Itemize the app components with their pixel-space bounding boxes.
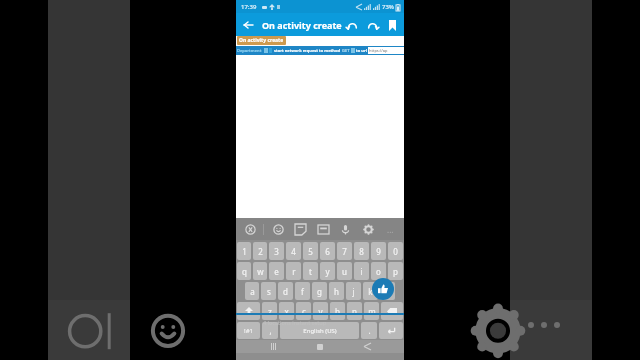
button[interactable]: Like [372, 278, 394, 300]
button[interactable]: d [278, 282, 293, 300]
staticText: ... [387, 224, 394, 235]
staticText: 8 [359, 246, 364, 257]
button[interactable]: q [237, 262, 251, 280]
button[interactable]: u [337, 262, 352, 280]
staticText: y [325, 266, 330, 277]
staticText: 6 [325, 246, 330, 257]
staticText: b [335, 306, 340, 317]
button[interactable]: z [262, 302, 277, 320]
button[interactable]: !#1 [237, 322, 260, 339]
staticText: 0 [393, 246, 398, 257]
button[interactable]: Settings [359, 220, 377, 238]
button[interactable]: 3 [269, 242, 284, 260]
button[interactable]: 1 [237, 242, 251, 260]
staticText: 4 locations instant setup [263, 319, 327, 326]
button[interactable]: j [346, 282, 361, 300]
button[interactable]: w [253, 262, 267, 280]
button[interactable]: m [364, 302, 379, 320]
staticText: 7 [342, 246, 347, 257]
staticText: z [268, 306, 272, 317]
button[interactable]: 7 [337, 242, 352, 260]
staticText: o [376, 266, 381, 277]
staticText: 4 [291, 246, 296, 257]
button[interactable]: a [245, 282, 259, 300]
button[interactable]: 8 [354, 242, 369, 260]
button[interactable]: b [330, 302, 345, 320]
button[interactable]: , [262, 322, 278, 339]
staticText: , [269, 325, 272, 336]
button[interactable]: Back [239, 16, 257, 34]
button[interactable]: 5 [303, 242, 318, 260]
button[interactable]: y [320, 262, 335, 280]
button[interactable]: Home [310, 340, 330, 353]
staticText: j [352, 286, 355, 297]
staticText: . [368, 325, 371, 336]
button[interactable]: 6 [320, 242, 335, 260]
button[interactable]: Clipboard [314, 220, 332, 238]
staticText: f [301, 286, 304, 297]
button[interactable]: Undo [342, 15, 362, 35]
staticText: n [352, 306, 357, 317]
button[interactable]: English (US) [280, 322, 359, 339]
staticText: English (US) [303, 327, 337, 335]
staticText: On activity create [239, 37, 284, 44]
staticText: to url [356, 48, 367, 53]
staticText: start network request to method [274, 48, 340, 53]
staticText: 9 [376, 246, 381, 257]
button[interactable]: h [329, 282, 344, 300]
button[interactable]: e [269, 262, 284, 280]
staticText: m [368, 306, 376, 317]
button[interactable]: v [313, 302, 328, 320]
button[interactable]: n [347, 302, 362, 320]
button[interactable]: Key [379, 322, 403, 339]
button[interactable]: Redo [362, 15, 382, 35]
button[interactable]: Voice typing [241, 220, 259, 238]
button[interactable]: 2 [253, 242, 267, 260]
button[interactable]: i [354, 262, 369, 280]
staticText: t [309, 266, 312, 277]
staticText: e [274, 266, 279, 277]
button[interactable]: p [388, 262, 403, 280]
staticText: On activity create [262, 19, 342, 31]
staticText: k [368, 286, 373, 297]
staticText: x [284, 306, 289, 317]
staticText: u [342, 266, 347, 277]
button[interactable]: c [296, 302, 311, 320]
button[interactable]: f [295, 282, 310, 300]
button[interactable]: x [279, 302, 294, 320]
staticText: r [292, 266, 296, 277]
staticText: w [257, 266, 264, 277]
staticText: 3 [274, 246, 279, 257]
button[interactable]: r [286, 262, 301, 280]
button[interactable]: g [312, 282, 327, 300]
staticText: GET [342, 48, 350, 53]
button[interactable]: l [380, 282, 395, 300]
button[interactable]: 4 [286, 242, 301, 260]
button[interactable]: Microphone [336, 220, 354, 238]
staticText: l [386, 286, 389, 297]
staticText: h [334, 286, 339, 297]
staticText: https://ap [368, 48, 388, 53]
button[interactable]: . [361, 322, 377, 339]
button[interactable]: 0 [388, 242, 403, 260]
button[interactable]: 9 [371, 242, 386, 260]
staticText: !#1 [244, 327, 253, 335]
staticText: 2 [258, 246, 263, 257]
button[interactable]: Back [357, 340, 377, 353]
button[interactable]: Recents [263, 340, 283, 353]
staticText: 1 [242, 246, 247, 257]
button[interactable]: s [261, 282, 276, 300]
button[interactable]: Bookmark [382, 15, 402, 35]
button[interactable]: Stickers [291, 220, 309, 238]
staticText: v [318, 306, 323, 317]
staticText: 73% [382, 3, 394, 11]
button[interactable]: o [371, 262, 386, 280]
button[interactable]: Key [381, 302, 403, 320]
button[interactable]: Key [237, 302, 260, 320]
button[interactable]: k [363, 282, 378, 300]
staticText: p [393, 266, 398, 277]
button[interactable]: Emoji [269, 220, 287, 238]
staticText: q [242, 266, 247, 277]
button[interactable]: t [303, 262, 318, 280]
